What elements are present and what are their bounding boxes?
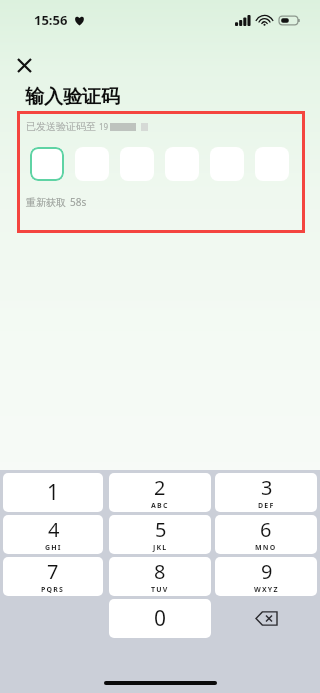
staticText: 7 xyxy=(47,558,59,585)
staticText: 9 xyxy=(261,558,273,585)
button[interactable]: 8 xyxy=(109,557,211,596)
staticText: 58s xyxy=(70,195,87,209)
staticText: PQRS xyxy=(41,585,65,595)
staticText: MNO xyxy=(255,543,277,553)
button[interactable]: Verification digit 5 xyxy=(210,147,244,181)
button[interactable]: 4 xyxy=(3,515,103,554)
button[interactable]: Verification digit 6 xyxy=(255,147,289,181)
staticText: 15:56 xyxy=(34,11,68,29)
button[interactable]: Verification digit 3 xyxy=(120,147,154,181)
button[interactable]: 7 xyxy=(3,557,103,596)
button[interactable]: Close xyxy=(10,51,38,79)
button[interactable]: 0 xyxy=(109,599,211,638)
button[interactable]: 6 xyxy=(215,515,317,554)
button[interactable]: 重新获取 xyxy=(26,195,87,209)
button[interactable]: Verification digit 2 xyxy=(75,147,109,181)
staticText: 0 xyxy=(154,604,167,633)
staticText: 已发送验证码至 xyxy=(26,120,96,133)
staticText: ABC xyxy=(151,501,169,511)
staticText: 3 xyxy=(261,474,273,501)
button[interactable]: Verification digit 4 xyxy=(165,147,199,181)
button[interactable]: 2 xyxy=(109,473,211,512)
staticText: 19 xyxy=(99,121,109,132)
staticText: 重新获取 xyxy=(26,196,66,209)
button[interactable]: 5 xyxy=(109,515,211,554)
button[interactable]: Verification digit 1 xyxy=(30,147,64,181)
staticText: 5 xyxy=(155,516,167,543)
staticText: WXYZ xyxy=(254,585,279,595)
staticText: 输入验证码 xyxy=(25,85,120,109)
staticText: 4 xyxy=(48,516,60,543)
staticText: TUV xyxy=(151,585,169,595)
button[interactable]: Backspace xyxy=(215,599,317,638)
staticText: 2 xyxy=(154,474,166,501)
staticText: 8 xyxy=(154,558,166,585)
staticText: 1 xyxy=(47,478,60,507)
staticText: DEF xyxy=(258,501,275,511)
button[interactable]: 3 xyxy=(215,473,317,512)
button[interactable]: 9 xyxy=(215,557,317,596)
staticText: GHI xyxy=(45,543,62,553)
button[interactable]: 1 xyxy=(3,473,103,512)
staticText: JKL xyxy=(153,543,168,553)
staticText: 6 xyxy=(260,516,272,543)
